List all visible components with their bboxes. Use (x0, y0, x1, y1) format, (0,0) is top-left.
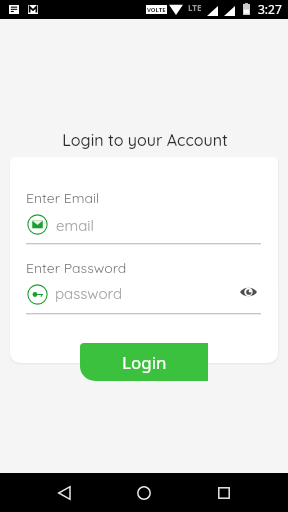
button[interactable]: Recent apps (204, 473, 244, 512)
staticText: email (56, 216, 94, 235)
staticText: Login (122, 351, 167, 374)
staticText: VOLTE (147, 6, 166, 14)
staticText: password (55, 284, 123, 303)
staticText: LTE (188, 2, 202, 13)
button[interactable]: Show password (237, 281, 259, 303)
button[interactable]: Back (44, 473, 84, 512)
staticText: Enter Email (26, 189, 100, 207)
staticText: Enter Password (26, 259, 127, 277)
staticText: 3:27 (258, 1, 282, 17)
button[interactable]: Login (80, 343, 208, 381)
button[interactable]: Home (124, 473, 164, 512)
staticText: Login to your Account (1, 130, 288, 150)
